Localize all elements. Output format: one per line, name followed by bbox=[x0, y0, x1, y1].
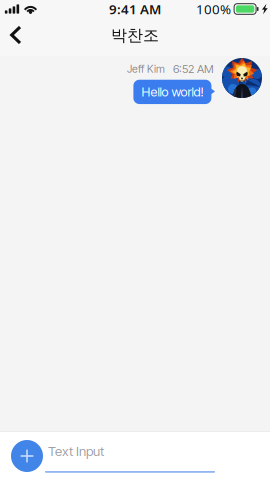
staticText: 9:41 AM bbox=[109, 0, 161, 18]
staticText: Jeff Kim bbox=[127, 62, 165, 75]
button[interactable]: Back bbox=[0, 17, 33, 57]
staticText: 박찬조 bbox=[111, 26, 159, 45]
staticText: 6:52 AM bbox=[173, 62, 214, 76]
staticText: Hello world! bbox=[141, 84, 203, 99]
button[interactable]: Add attachment bbox=[11, 440, 43, 472]
staticText: 100% bbox=[196, 0, 231, 18]
button[interactable]: Text Input bbox=[45, 432, 215, 480]
staticText: Text Input bbox=[48, 443, 104, 459]
